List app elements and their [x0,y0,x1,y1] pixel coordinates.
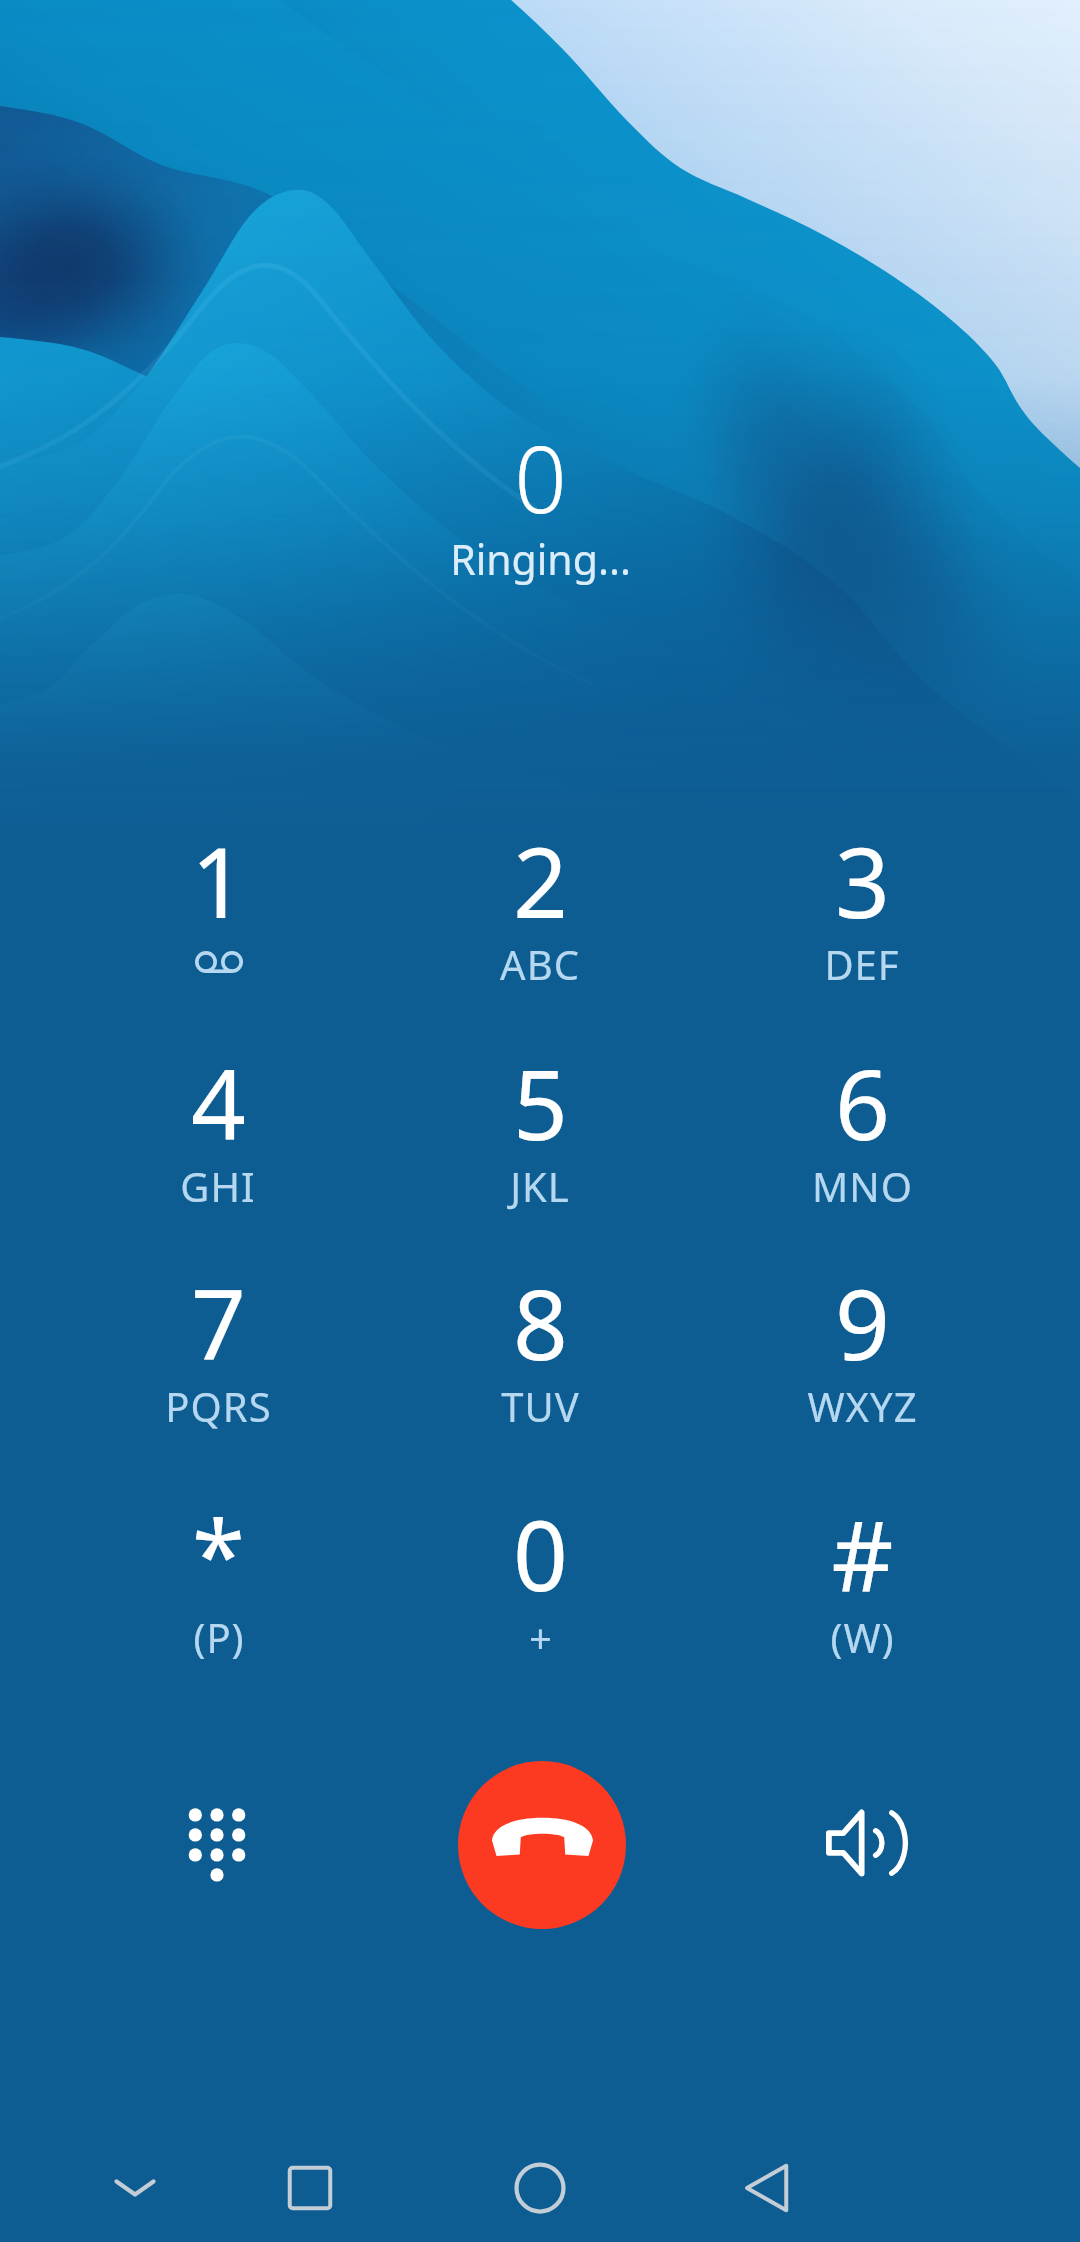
button[interactable]: 2 [385,815,695,1015]
staticText: 4 [191,1037,246,1168]
button[interactable]: * [63,1488,373,1688]
staticText: # [831,1488,894,1619]
staticText: MNO [812,1159,913,1213]
staticText: JKL [510,1159,570,1213]
button[interactable]: 3 [707,815,1017,1015]
button[interactable]: Home [485,2133,595,2242]
button[interactable]: 4 [63,1037,373,1237]
staticText: 9 [835,1257,890,1388]
staticText: (P) [193,1610,245,1664]
staticText: 7 [191,1257,246,1388]
button[interactable]: 6 [707,1037,1017,1237]
staticText: 6 [835,1037,890,1168]
button[interactable]: Show dialpad [147,1775,287,1915]
staticText: 3 [835,815,890,946]
button[interactable]: End call [458,1761,626,1929]
staticText: Ringing... [450,531,631,587]
staticText: + [529,1610,553,1664]
staticText: 0 [514,415,567,540]
button[interactable]: 7 [63,1257,373,1457]
staticText: PQRS [165,1379,272,1433]
staticText: 5 [513,1037,568,1168]
staticText: * [192,1488,245,1619]
button[interactable]: 8 [385,1257,695,1457]
staticText: 1 [191,815,246,946]
button[interactable]: 5 [385,1037,695,1237]
staticText: 8 [513,1257,568,1388]
button[interactable]: Back [714,2133,824,2242]
staticText: 2 [513,815,568,946]
staticText: GHI [180,1159,256,1213]
staticText: 0 [513,1488,568,1619]
button[interactable]: # [707,1488,1017,1688]
button[interactable]: 0 [385,1488,695,1688]
button[interactable]: Hide keypad [80,2133,190,2242]
button[interactable]: 9 [707,1257,1017,1457]
button[interactable]: 1 [63,815,373,1015]
staticText: (W) [830,1610,895,1664]
staticText: WXYZ [807,1379,918,1433]
staticText: DEF [824,937,900,991]
staticText: TUV [501,1379,580,1433]
button[interactable]: Speaker [794,1773,934,1913]
staticText: ABC [500,937,580,991]
button[interactable]: Recent apps [255,2133,365,2242]
